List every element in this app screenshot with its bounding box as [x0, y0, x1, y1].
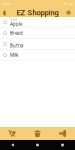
staticText: Butter — [10, 43, 24, 49]
button[interactable]: Bread — [0, 28, 75, 38]
button[interactable]: Share — [50, 127, 75, 140]
button[interactable]: 5 kg — [0, 17, 75, 27]
staticText: 1 — [10, 39, 12, 43]
button[interactable]: 1 — [0, 39, 75, 49]
button[interactable]: Shop — [0, 127, 25, 140]
button[interactable]: Milk — [0, 50, 75, 60]
staticText: EZ Shopping — [16, 8, 58, 17]
staticText: 5 kg — [10, 18, 17, 21]
button[interactable]: Home — [25, 140, 50, 150]
button[interactable]: Delete — [25, 127, 50, 140]
button[interactable]: Settings — [64, 8, 73, 17]
staticText: Apple — [10, 21, 22, 27]
staticText: Milk — [10, 52, 18, 58]
button[interactable]: Back — [0, 140, 25, 150]
staticText: Bread — [10, 30, 23, 36]
button[interactable]: Recents — [50, 140, 75, 150]
